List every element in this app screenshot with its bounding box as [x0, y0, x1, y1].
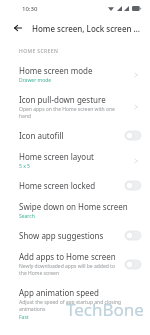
button[interactable]: Home screen locked: [0, 175, 150, 196]
staticText: Adjust the speed of app startup and clos…: [19, 299, 128, 313]
staticText: Newly downloaded apps will be added to t…: [19, 263, 120, 277]
staticText: Icon autofill: [19, 130, 64, 141]
button[interactable]: App animation speed: [0, 282, 150, 326]
staticText: 10:30: [22, 5, 38, 13]
staticText: 5 x 5: [19, 163, 30, 170]
staticText: Show app suggestions: [19, 230, 104, 241]
staticText: Icon pull-down gesture: [19, 94, 106, 105]
button[interactable]: Swipe down on Home screen: [0, 196, 150, 225]
staticText: Search: [19, 213, 35, 220]
button[interactable]: Add apps to Home screen: [0, 246, 150, 282]
button[interactable]: Toggle: [124, 259, 142, 270]
staticText: Swipe down on Home screen: [19, 201, 128, 212]
button[interactable]: Home screen layout: [0, 146, 150, 175]
staticText: HOME SCREEN: [19, 48, 59, 55]
button[interactable]: Icon autofill: [0, 125, 150, 146]
staticText: Home screen mode: [19, 65, 93, 76]
staticText: Home screen, Lock screen & Always-O…: [32, 23, 144, 34]
staticText: Drawer mode: [19, 77, 52, 84]
button[interactable]: Toggle: [124, 230, 142, 241]
button[interactable]: Toggle: [124, 130, 142, 141]
staticText: TechBone: [66, 298, 144, 321]
staticText: Fast: [19, 314, 29, 321]
staticText: Home screen layout: [19, 151, 95, 162]
staticText: Open apps on the Home screen with one ha…: [19, 106, 126, 120]
staticText: Add apps to Home screen: [19, 251, 116, 262]
button[interactable]: Toggle: [124, 180, 142, 191]
button[interactable]: Show app suggestions: [0, 225, 150, 246]
button[interactable]: Back: [10, 20, 26, 36]
button[interactable]: Home screen mode: [0, 60, 150, 89]
button[interactable]: Icon pull-down gesture: [0, 89, 150, 125]
staticText: Home screen locked: [19, 180, 96, 191]
staticText: App animation speed: [19, 287, 100, 298]
